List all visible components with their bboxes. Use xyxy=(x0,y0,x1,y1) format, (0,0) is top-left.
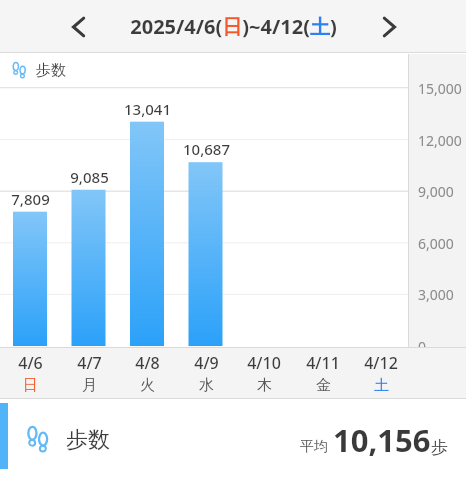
staticText: 6,000 xyxy=(418,234,454,253)
staticText: 木 xyxy=(257,376,272,395)
staticText: 4/6 xyxy=(18,352,43,374)
staticText: 2025/4/6(日)~4/12(土) xyxy=(130,13,337,40)
staticText: 4/10 xyxy=(247,352,281,374)
staticText: 火 xyxy=(140,376,155,395)
staticText: 平均 xyxy=(300,438,328,456)
staticText: 0 xyxy=(418,337,427,356)
staticText: 歩数 xyxy=(66,426,110,454)
staticText: 月 xyxy=(82,376,97,395)
staticText: 4/8 xyxy=(135,352,160,374)
staticText: 10,156 xyxy=(333,419,431,461)
staticText: 3,000 xyxy=(418,285,454,304)
staticText: 4/7 xyxy=(77,352,102,374)
staticText: 4/9 xyxy=(194,352,219,374)
staticText: 10,687 xyxy=(183,139,230,159)
button[interactable]: Next week xyxy=(368,5,412,49)
staticText: 13,041 xyxy=(124,99,171,119)
staticText: 金 xyxy=(316,376,331,395)
staticText: 歩数 xyxy=(36,61,66,80)
button[interactable]: 歩数 xyxy=(0,400,466,480)
staticText: 4/12 xyxy=(364,352,398,374)
staticText: 7,809 xyxy=(11,189,50,209)
staticText: 9,000 xyxy=(418,182,454,201)
staticText: 歩 xyxy=(431,437,448,458)
staticText: 水 xyxy=(199,376,214,395)
staticText: 土 xyxy=(374,376,389,395)
staticText: 日 xyxy=(23,376,38,395)
staticText: 4/11 xyxy=(306,352,340,374)
staticText: 9,085 xyxy=(70,167,109,187)
button[interactable]: Previous week xyxy=(56,5,100,49)
staticText: 12,000 xyxy=(418,131,462,150)
staticText: 15,000 xyxy=(418,79,462,98)
